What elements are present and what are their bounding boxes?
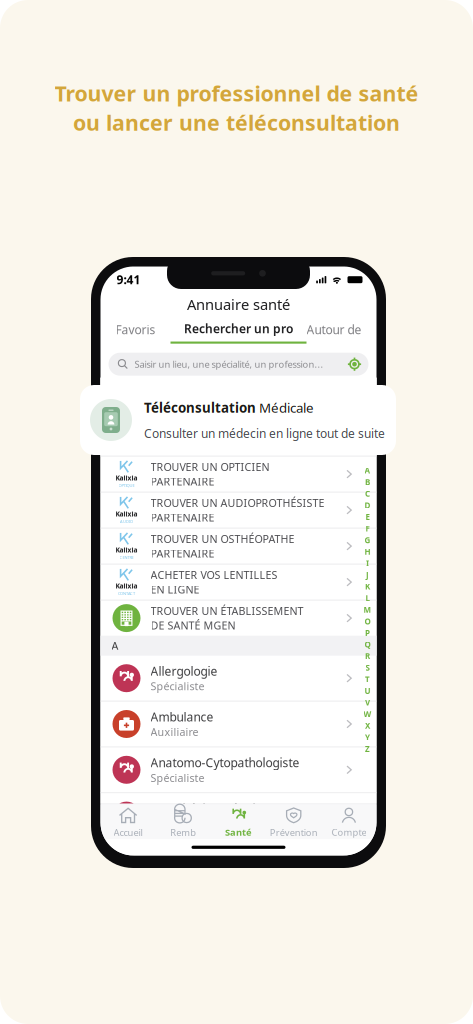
staticText: Allergologie [150, 663, 217, 679]
button[interactable]: Kalixia [100, 492, 376, 528]
button[interactable]: Prévention [266, 802, 321, 841]
staticText: 9:41 [116, 272, 140, 288]
staticText: D [364, 500, 370, 511]
staticText: TROUVER UN ÉTABLISSEMENT [150, 604, 303, 618]
staticText: Prévention [270, 826, 318, 838]
staticText: Kalixia [115, 581, 137, 590]
staticText: Ambulance [150, 709, 213, 725]
button[interactable]: Anatomo-Cytopathologiste [100, 747, 376, 792]
staticText: A [111, 639, 118, 653]
staticText: Anesthésiste-réanimateur [150, 800, 296, 816]
staticText: A [364, 465, 370, 476]
staticText: K [365, 581, 370, 592]
button[interactable]: Autour de [306, 316, 361, 344]
staticText: Y [365, 732, 370, 743]
staticText: H [364, 546, 370, 557]
staticText: I [366, 558, 369, 569]
staticText: ACHETER VOS LENTILLES [150, 568, 277, 582]
staticText: Favoris [115, 322, 155, 338]
staticText: U [364, 686, 370, 696]
staticText: M [363, 604, 371, 615]
staticText: OPTIQUE [118, 483, 134, 488]
staticText: Spécialiste [150, 771, 204, 785]
staticText: X [365, 720, 370, 731]
staticText: Trouver un professionnel de santé [54, 79, 418, 107]
button[interactable]: Ambulance [100, 701, 376, 746]
staticText: Kalixia [115, 473, 137, 482]
staticText: PARTENAIRE [150, 510, 214, 525]
staticText: Rechercher un pro [184, 321, 293, 336]
button[interactable]: Kalixia [100, 456, 376, 492]
staticText: Saisir un lieu, une spécialité, un profe… [134, 358, 323, 370]
staticText: TROUVER UN OSTHÉOPATHE [150, 532, 294, 546]
staticText: Téléconsultation Médicale [144, 399, 314, 416]
staticText: C [365, 488, 370, 499]
staticText: Compte [331, 826, 366, 838]
button[interactable]: Rechercher un pro [170, 316, 306, 344]
staticText: R [365, 651, 370, 661]
staticText: PARTENAIRE [150, 474, 214, 489]
button[interactable]: TROUVER UN ÉTABLISSEMENT [100, 600, 376, 636]
staticText: Kalixia [115, 545, 137, 554]
staticText: V [365, 697, 370, 708]
staticText: G [364, 535, 370, 545]
staticText: Accueil [114, 826, 143, 838]
button[interactable]: Anesthésiste-réanimateur [100, 793, 376, 838]
staticText: Annuaire santé [187, 294, 290, 314]
button[interactable]: Allergologie [100, 656, 376, 701]
staticText: B [365, 477, 370, 487]
staticText: TROUVER UN OPTICIEN [150, 460, 269, 474]
staticText: Remb [170, 826, 196, 838]
staticText: Spécialiste [150, 816, 204, 831]
staticText: S [365, 662, 369, 673]
staticText: T [365, 674, 370, 685]
button[interactable]: Remb [156, 802, 211, 841]
staticText: Z [365, 744, 370, 754]
staticText: J [366, 570, 369, 580]
staticText: CENTRE [119, 555, 133, 560]
staticText: ou lancer une téléconsultation [73, 108, 400, 137]
staticText: CONTACT [118, 591, 135, 596]
staticText: P [365, 628, 370, 638]
staticText: Consulter un médecin en ligne tout de su… [144, 425, 385, 441]
staticText: Spécialiste [150, 679, 204, 693]
staticText: DE SANTÉ MGEN [150, 618, 235, 633]
button[interactable]: Accueil [100, 802, 156, 841]
staticText: L [365, 593, 369, 603]
staticText: Q [364, 639, 370, 650]
button[interactable]: Kalixia [100, 564, 376, 600]
staticText: F [365, 523, 369, 534]
button[interactable]: Favoris [100, 316, 170, 344]
staticText: O [364, 616, 370, 627]
staticText: PARTENAIRE [150, 546, 214, 561]
staticText: Autour de [306, 322, 361, 338]
staticText: TROUVER UN AUDIOPROTHÉSISTE [150, 496, 324, 510]
staticText: Santé [225, 826, 252, 838]
staticText: Anatomo-Cytopathologiste [150, 755, 299, 771]
staticText: AUDIO [120, 519, 133, 524]
button[interactable]: Santé [211, 802, 266, 841]
button[interactable]: Kalixia [100, 528, 376, 564]
button[interactable]: Compte [321, 802, 376, 841]
staticText: Kalixia [115, 509, 137, 518]
staticText: E [365, 512, 369, 522]
staticText: W [363, 709, 371, 719]
staticText: EN LIGNE [150, 582, 199, 597]
staticText: Auxiliaire [150, 725, 198, 739]
